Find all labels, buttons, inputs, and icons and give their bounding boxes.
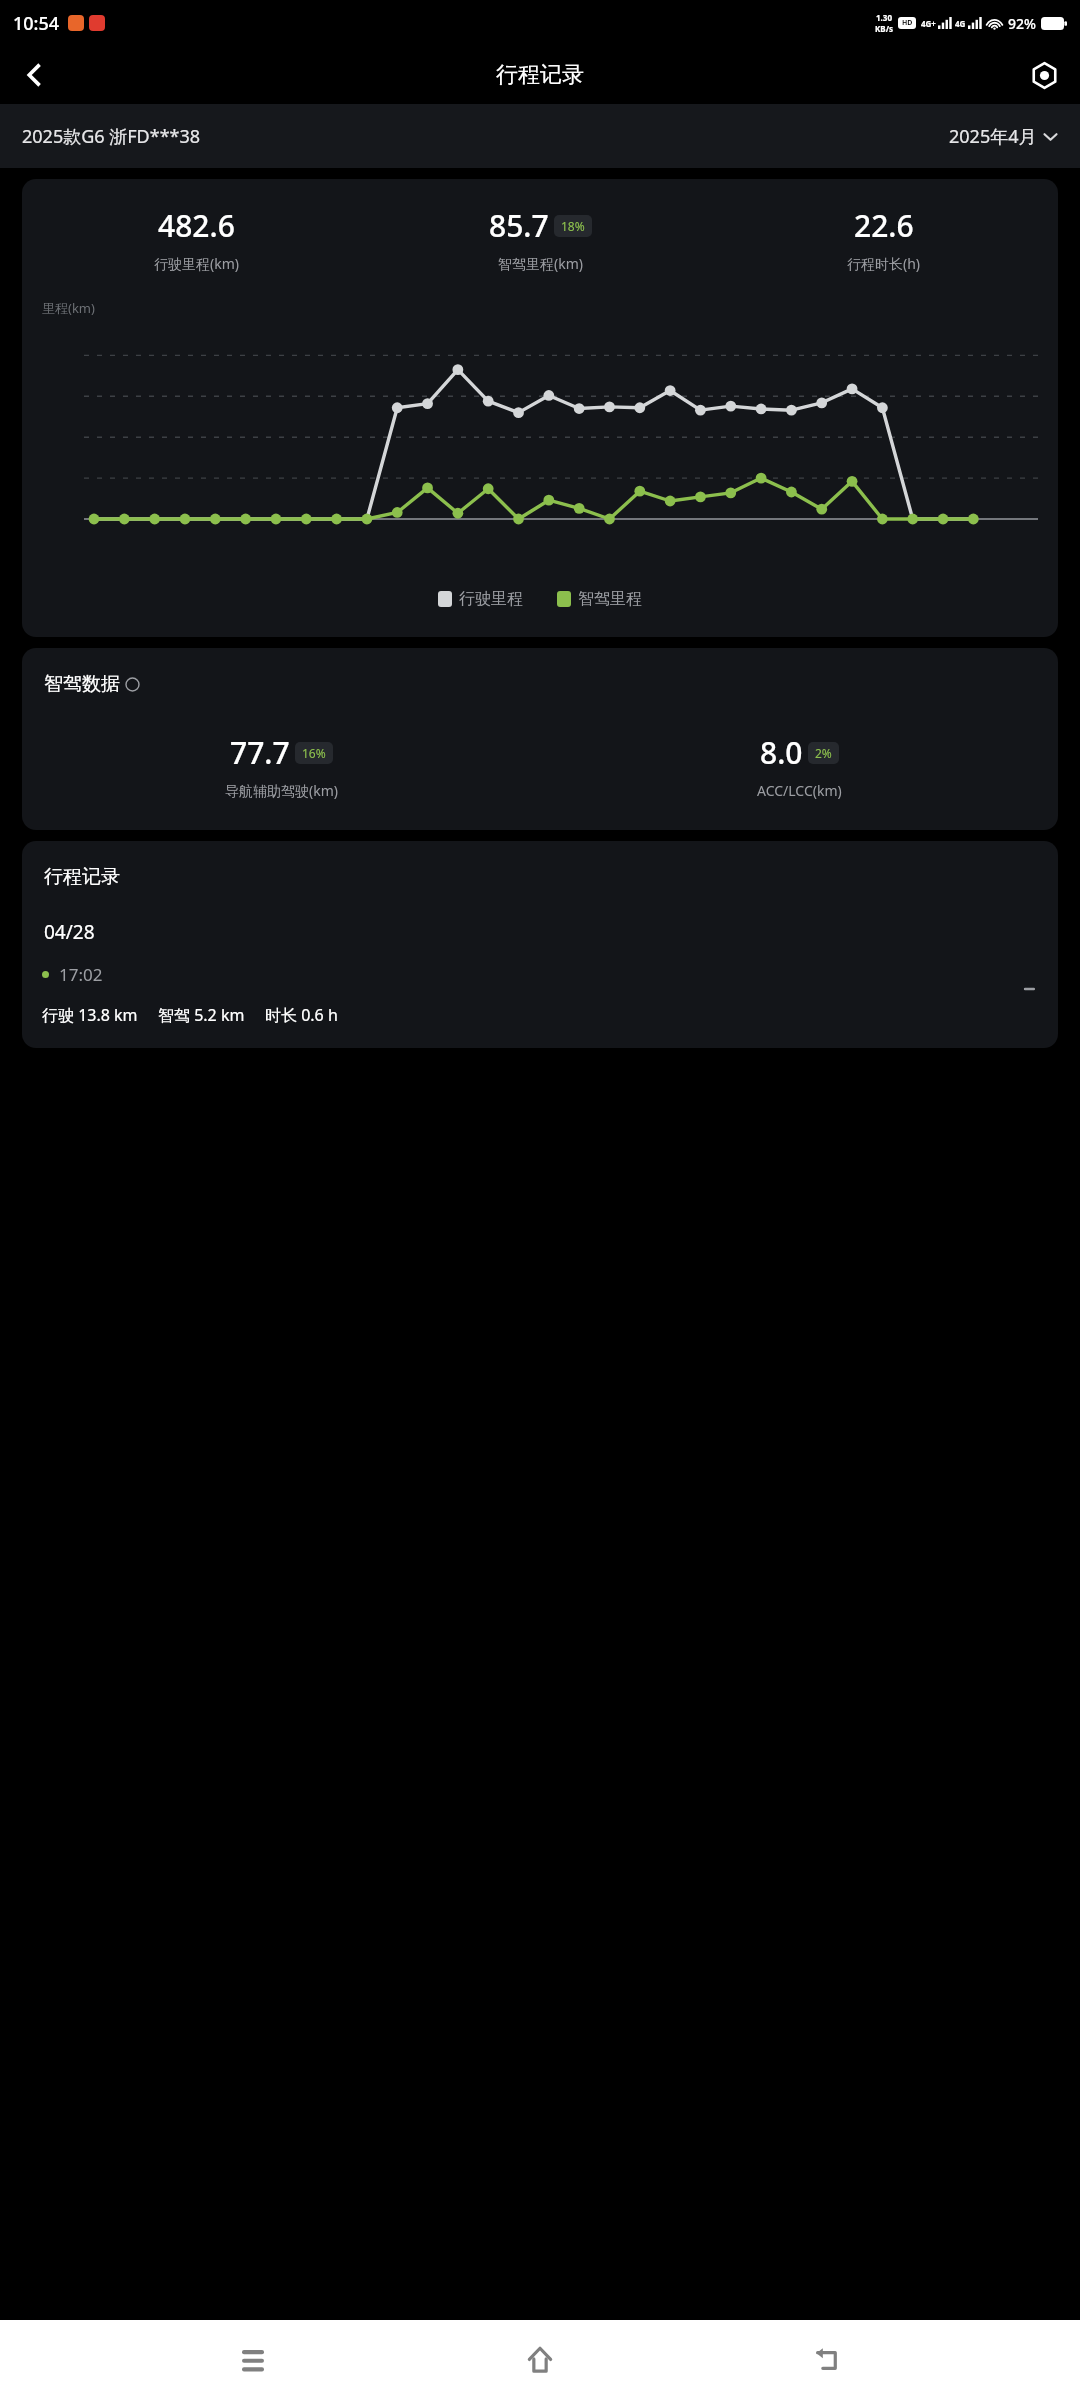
staticText: 10:54 bbox=[13, 11, 60, 36]
staticText: HD bbox=[902, 18, 913, 28]
button[interactable]: Settings bbox=[1018, 49, 1070, 101]
button[interactable]: 智驾数据 bbox=[44, 672, 140, 696]
staticText: 行驶里程 bbox=[459, 589, 523, 609]
staticText: 482.6 bbox=[158, 205, 235, 246]
staticText: 1.30 bbox=[876, 12, 892, 23]
staticText: 导航辅助驾驶(km) bbox=[225, 781, 338, 800]
staticText: 04/28 bbox=[44, 919, 95, 945]
staticText: 智驾数据 bbox=[44, 672, 120, 696]
staticText: 16% bbox=[302, 745, 326, 761]
staticText: 行程记录 bbox=[44, 865, 120, 889]
staticText: 17:02 bbox=[59, 963, 103, 986]
button[interactable]: 2025年4月 bbox=[945, 116, 1062, 157]
staticText: 85.7 bbox=[489, 205, 549, 246]
staticText: 4G+ bbox=[921, 18, 936, 29]
staticText: 8.0 bbox=[760, 732, 803, 773]
staticText: 智驾里程 bbox=[578, 589, 642, 609]
button[interactable]: 行驶里程 bbox=[434, 585, 527, 613]
staticText: 2025年4月 bbox=[949, 124, 1037, 149]
staticText: 行程时长(h) bbox=[847, 254, 921, 273]
button[interactable]: Recent apps bbox=[218, 2325, 288, 2395]
staticText: 里程(km) bbox=[42, 299, 95, 317]
staticText: 2% bbox=[815, 745, 832, 761]
staticText: 时长 0.6 h bbox=[265, 1004, 338, 1026]
staticText: 2025款G6 浙FD***38 bbox=[22, 124, 201, 149]
staticText: 行驶里程(km) bbox=[154, 254, 239, 273]
button[interactable]: Back bbox=[793, 2325, 863, 2395]
staticText: KB/s bbox=[875, 23, 893, 34]
button[interactable]: Home bbox=[505, 2325, 575, 2395]
staticText: ACC/LCC(km) bbox=[757, 781, 842, 800]
staticText: 智驾 5.2 km bbox=[158, 1004, 245, 1026]
staticText: 行驶 13.8 km bbox=[42, 1004, 138, 1026]
staticText: 18% bbox=[561, 218, 585, 234]
button[interactable]: 智驾里程 bbox=[553, 585, 646, 613]
staticText: 智驾里程(km) bbox=[498, 254, 583, 273]
staticText: 22.6 bbox=[854, 205, 914, 246]
staticText: 92% bbox=[1008, 14, 1036, 33]
staticText: 行程记录 bbox=[496, 61, 584, 89]
button[interactable]: 17:02 bbox=[22, 963, 1058, 1026]
staticText: 77.7 bbox=[230, 732, 290, 773]
button[interactable]: Back bbox=[8, 49, 60, 101]
staticText: 4G bbox=[955, 18, 966, 29]
